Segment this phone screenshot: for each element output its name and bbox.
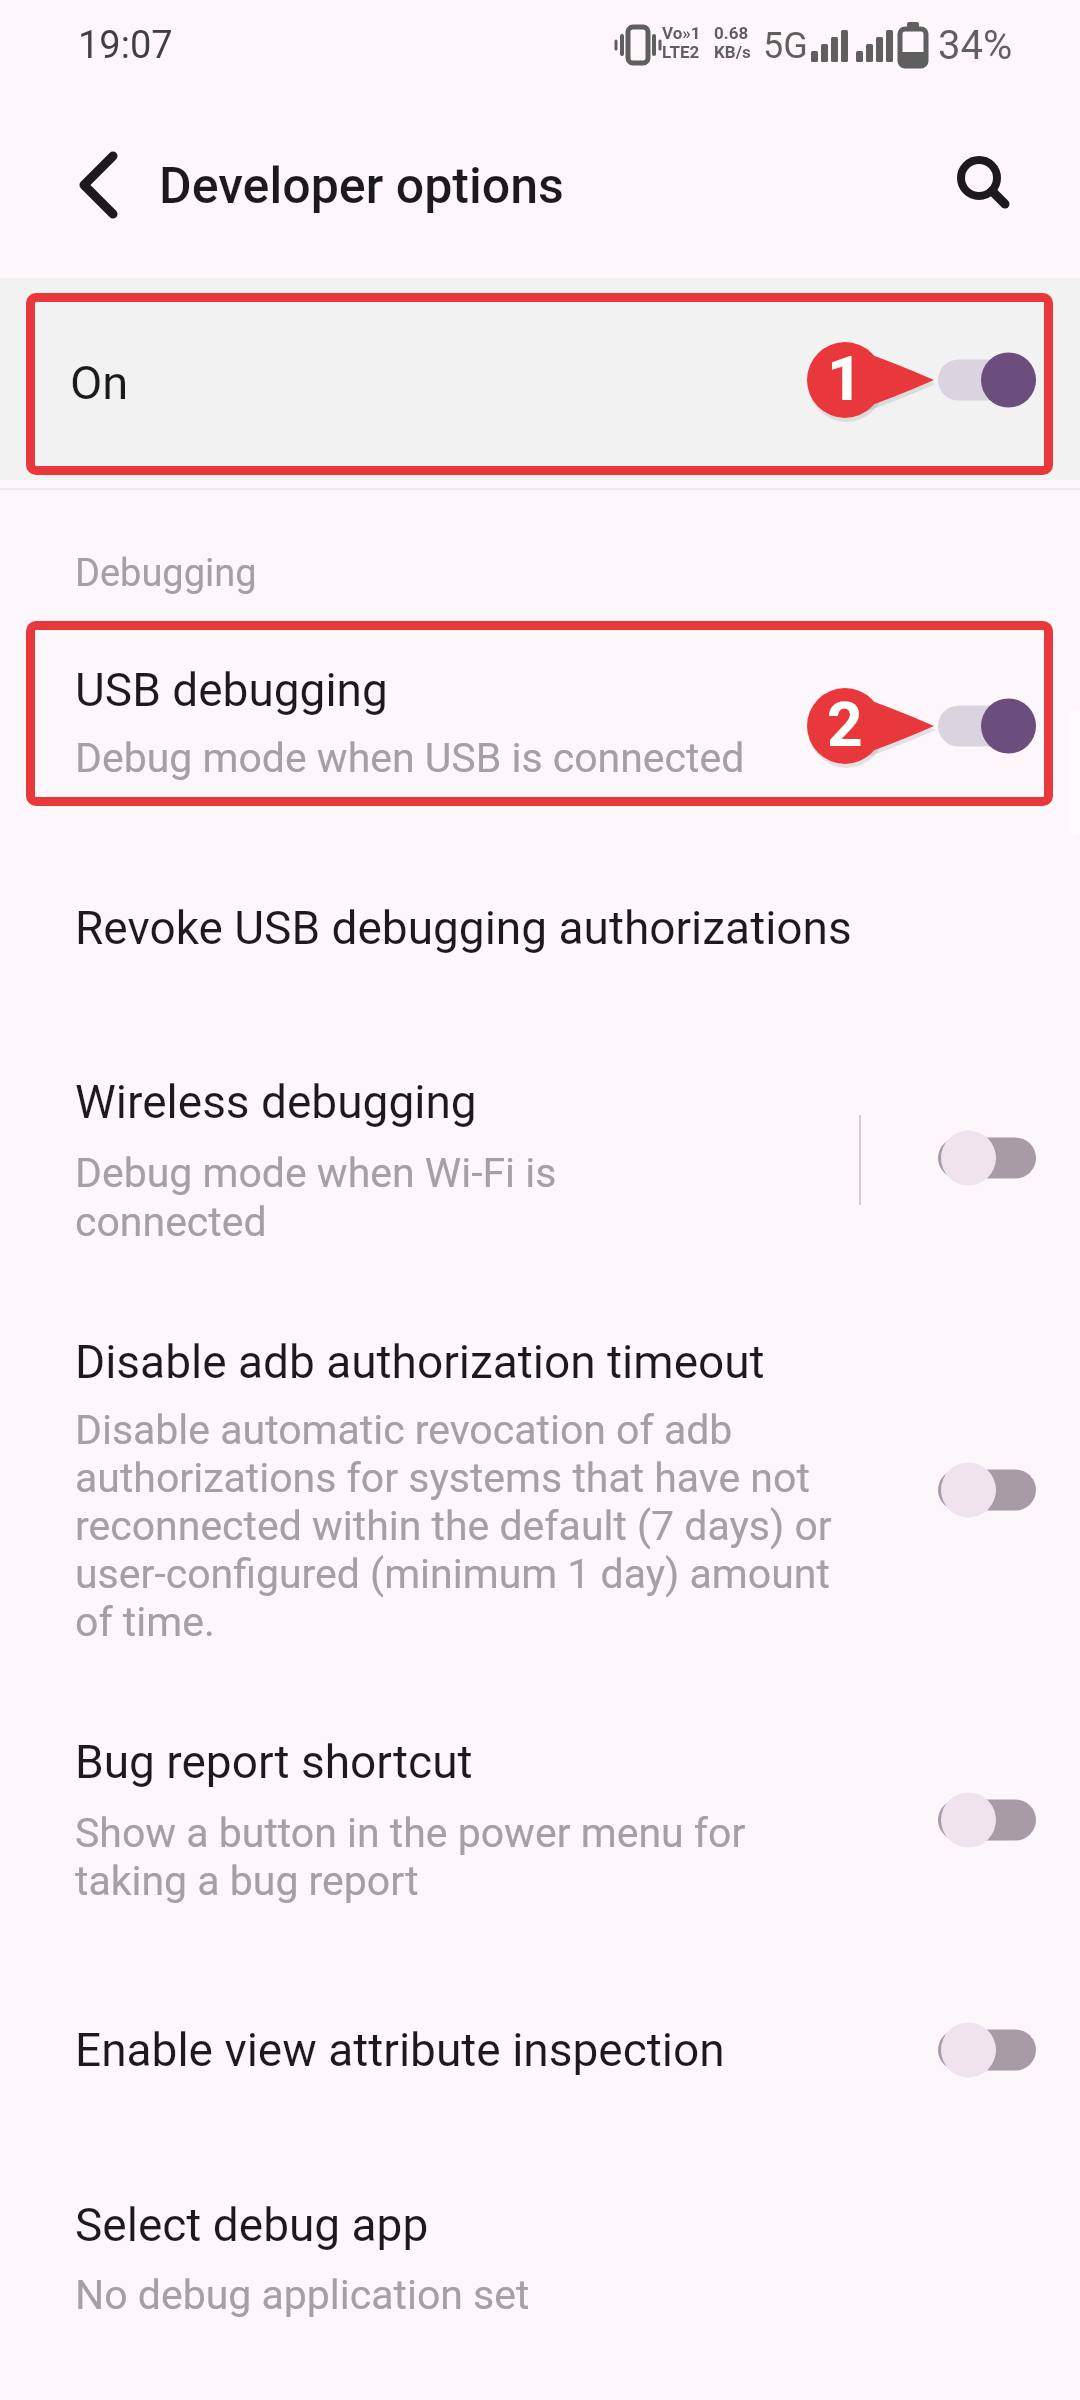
button[interactable] <box>930 345 1050 415</box>
staticText: Debug mode when USB is connected <box>75 734 745 782</box>
button[interactable] <box>930 691 1050 761</box>
staticText: Enable view attribute inspection <box>75 2023 725 2077</box>
staticText: No debug application set <box>75 2271 530 2319</box>
button[interactable] <box>0 862 1080 994</box>
staticText: reconnected within the default (7 days) … <box>75 1502 832 1550</box>
staticText: 19:07 <box>78 23 173 68</box>
button[interactable] <box>0 1726 1080 1921</box>
staticText: Wireless debugging <box>75 1075 477 1129</box>
staticText: 1 <box>827 342 863 415</box>
staticText: connected <box>75 1198 267 1246</box>
button[interactable] <box>0 1326 1080 1656</box>
staticText: KB/s <box>714 42 751 62</box>
staticText: 5G <box>763 25 808 67</box>
button[interactable] <box>930 1123 1050 1193</box>
staticText: Show a button in the power menu for <box>75 1809 746 1857</box>
staticText: authorizations for systems that have not <box>75 1454 810 1502</box>
staticText: Debugging <box>75 551 257 596</box>
button[interactable] <box>0 2165 1080 2365</box>
button[interactable] <box>0 621 1080 806</box>
staticText: 2 <box>827 688 863 761</box>
button[interactable] <box>0 293 1080 475</box>
staticText: USB debugging <box>75 663 388 717</box>
staticText: of time. <box>75 1598 215 1646</box>
button[interactable] <box>60 145 140 225</box>
staticText: 0.68 <box>714 23 749 43</box>
staticText: Disable automatic revocation of adb <box>75 1406 733 1454</box>
button[interactable] <box>930 2015 1050 2085</box>
staticText: 34% <box>938 22 1013 69</box>
staticText: Revoke USB debugging authorizations <box>75 901 852 955</box>
staticText: user-configured (minimum 1 day) amount <box>75 1550 830 1598</box>
staticText: Developer options <box>159 157 564 216</box>
staticText: Vo»1 <box>662 23 701 43</box>
staticText: Disable adb authorization timeout <box>75 1335 765 1389</box>
button[interactable] <box>939 138 1019 218</box>
button[interactable] <box>0 1056 1080 1256</box>
staticText: Bug report shortcut <box>75 1735 473 1789</box>
button[interactable] <box>0 1985 1080 2115</box>
staticText: On <box>70 355 129 410</box>
staticText: Select debug app <box>75 2198 429 2252</box>
staticText: taking a bug report <box>75 1857 419 1905</box>
button[interactable] <box>930 1455 1050 1525</box>
button[interactable] <box>930 1785 1050 1855</box>
staticText: LTE2 <box>662 42 700 62</box>
staticText: Debug mode when Wi-Fi is <box>75 1149 557 1197</box>
